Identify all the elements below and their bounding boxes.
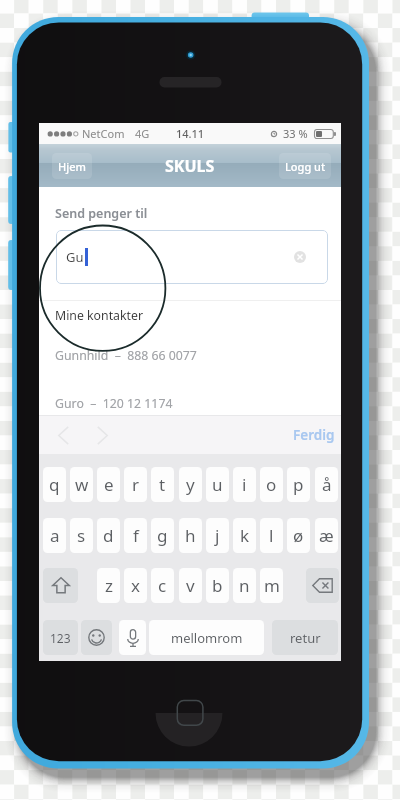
staticText: v bbox=[186, 574, 195, 597]
button[interactable]: l bbox=[260, 518, 283, 553]
button[interactable]: Hjem bbox=[52, 153, 92, 179]
button[interactable]: s bbox=[70, 518, 93, 553]
button[interactable]: mellomrom bbox=[149, 620, 264, 655]
button[interactable]: t bbox=[151, 467, 174, 502]
button[interactable]: å bbox=[315, 467, 338, 502]
staticText: w bbox=[75, 473, 89, 496]
button[interactable]: b bbox=[206, 568, 229, 603]
staticText: retur bbox=[290, 629, 321, 647]
staticText: 123 bbox=[50, 630, 71, 646]
button[interactable]: Dictation bbox=[119, 620, 146, 655]
staticText: u bbox=[212, 473, 223, 496]
staticText: m bbox=[264, 574, 280, 597]
button[interactable]: i bbox=[233, 467, 256, 502]
button[interactable]: d bbox=[97, 518, 120, 553]
staticText: k bbox=[240, 524, 250, 547]
button[interactable]: Next field bbox=[90, 420, 114, 450]
button[interactable]: y bbox=[179, 467, 202, 502]
staticText: c bbox=[158, 574, 167, 597]
button[interactable]: q bbox=[43, 467, 66, 502]
button[interactable]: Shift bbox=[43, 568, 78, 603]
button[interactable]: k bbox=[233, 518, 256, 553]
staticText: n bbox=[239, 574, 250, 597]
staticText: ø bbox=[293, 524, 304, 547]
staticText: å bbox=[322, 473, 332, 496]
staticText: SKULS bbox=[165, 155, 215, 177]
button[interactable]: z bbox=[97, 568, 120, 603]
staticText: l bbox=[269, 524, 274, 547]
staticText: f bbox=[133, 524, 139, 547]
button[interactable]: æ bbox=[315, 518, 338, 553]
staticText: Gunnhild – 888 66 0077 bbox=[55, 347, 197, 364]
button[interactable]: e bbox=[97, 467, 120, 502]
button[interactable]: c bbox=[151, 568, 174, 603]
staticText: o bbox=[266, 473, 277, 496]
staticText: y bbox=[186, 473, 195, 496]
button[interactable]: Mine kontakter bbox=[39, 304, 341, 330]
staticText: Guro – 120 12 1174 bbox=[55, 395, 173, 412]
staticText: Mine kontakter bbox=[55, 307, 144, 324]
button[interactable]: p bbox=[287, 467, 310, 502]
staticText: Gu bbox=[66, 248, 84, 266]
button[interactable]: n bbox=[233, 568, 256, 603]
staticText: e bbox=[104, 473, 114, 496]
staticText: d bbox=[103, 524, 114, 547]
button[interactable]: w bbox=[70, 467, 93, 502]
button[interactable]: r bbox=[124, 467, 147, 502]
button[interactable]: Gunnhild – 888 66 0077 bbox=[39, 344, 341, 370]
staticText: z bbox=[105, 574, 113, 597]
button[interactable]: x bbox=[124, 568, 147, 603]
button[interactable]: Ferdig bbox=[289, 419, 339, 451]
staticText: Send penger til bbox=[55, 205, 148, 222]
button[interactable]: Backspace bbox=[306, 568, 339, 603]
button[interactable]: Guro – 120 12 1174 bbox=[39, 392, 341, 418]
staticText: NetCom bbox=[82, 126, 125, 141]
staticText: a bbox=[50, 524, 60, 547]
button[interactable]: j bbox=[206, 518, 229, 553]
button[interactable]: v bbox=[179, 568, 202, 603]
staticText: Hjem bbox=[58, 159, 86, 174]
staticText: æ bbox=[319, 524, 334, 547]
staticText: Logg ut bbox=[285, 159, 326, 174]
staticText: r bbox=[132, 473, 140, 496]
staticText: i bbox=[242, 473, 247, 496]
button[interactable]: f bbox=[124, 518, 147, 553]
staticText: Ferdig bbox=[293, 426, 335, 444]
staticText: 14.11 bbox=[176, 126, 205, 141]
button[interactable]: m bbox=[260, 568, 283, 603]
button[interactable]: Emoji bbox=[81, 620, 112, 655]
button[interactable]: g bbox=[151, 518, 174, 553]
staticText: x bbox=[131, 574, 140, 597]
button[interactable]: 123 bbox=[43, 620, 78, 655]
staticText: t bbox=[159, 473, 166, 496]
staticText: mellomrom bbox=[171, 629, 243, 647]
staticText: p bbox=[293, 473, 304, 496]
staticText: 4G bbox=[135, 126, 150, 141]
staticText: h bbox=[185, 524, 196, 547]
staticText: 33 % bbox=[283, 126, 308, 141]
button[interactable]: a bbox=[43, 518, 66, 553]
button[interactable]: Gu bbox=[56, 230, 328, 284]
button[interactable]: Previous field bbox=[51, 420, 75, 450]
staticText: b bbox=[212, 574, 223, 597]
button[interactable]: ø bbox=[287, 518, 310, 553]
button[interactable]: retur bbox=[272, 620, 338, 655]
button[interactable]: Logg ut bbox=[279, 153, 331, 179]
staticText: s bbox=[77, 524, 86, 547]
button[interactable]: h bbox=[179, 518, 202, 553]
staticText: j bbox=[215, 524, 220, 547]
button[interactable]: o bbox=[260, 467, 283, 502]
button[interactable]: u bbox=[206, 467, 229, 502]
staticText: g bbox=[157, 524, 168, 547]
staticText: q bbox=[49, 473, 60, 496]
